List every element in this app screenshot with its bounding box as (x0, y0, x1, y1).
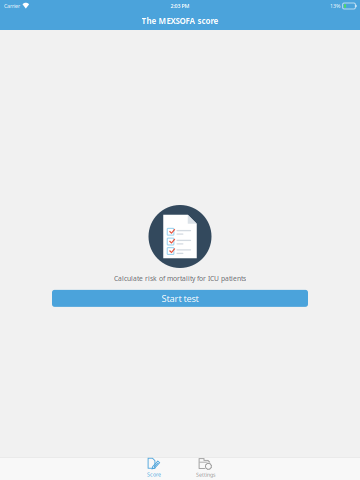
staticText: Score (147, 471, 161, 478)
staticText: 2:03 PM (170, 2, 189, 10)
button[interactable]: Settings (180, 458, 232, 480)
staticText: Calculate risk of mortality for ICU pati… (114, 274, 246, 283)
staticText: The MEXSOFA score (141, 16, 218, 26)
staticText: Carrier (4, 2, 20, 10)
button[interactable]: Score (128, 458, 180, 480)
button[interactable]: Start test (52, 290, 308, 307)
staticText: Start test (161, 292, 198, 305)
staticText: 13% (330, 2, 340, 10)
staticText: Settings (196, 471, 216, 478)
